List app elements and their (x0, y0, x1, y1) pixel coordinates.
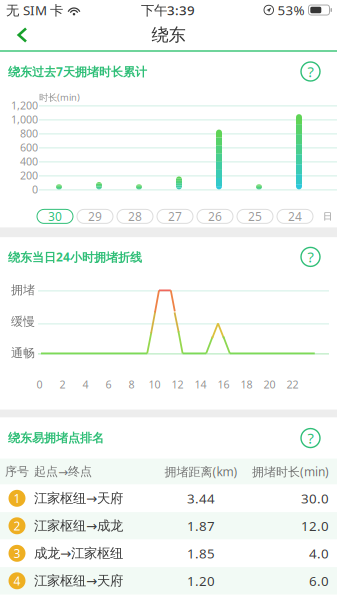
staticText: 6 (105, 377, 111, 392)
staticText: 4 (13, 573, 20, 589)
staticText: 20 (263, 377, 275, 392)
button[interactable]: Help (301, 62, 320, 81)
staticText: 27 (168, 208, 182, 224)
staticText: 拥堵距离(km) (164, 464, 237, 479)
staticText: 12.0 (301, 517, 329, 535)
staticText: 1.20 (187, 572, 215, 590)
button[interactable]: 26 (197, 209, 233, 223)
staticText: 缓慢 (11, 314, 35, 329)
staticText: 26 (208, 208, 222, 224)
staticText: 成龙→江家枢纽 (34, 545, 123, 561)
staticText: 10 (148, 377, 160, 392)
staticText: 时长(min) (39, 91, 80, 103)
staticText: 24 (288, 208, 302, 224)
staticText: 4.0 (309, 544, 329, 562)
button[interactable]: 4 (0, 567, 337, 595)
staticText: 30.0 (301, 489, 329, 507)
staticText: 0 (32, 182, 38, 196)
staticText: 18 (240, 377, 252, 392)
staticText: 江家枢纽→成龙 (34, 518, 123, 534)
staticText: 6.0 (309, 572, 329, 590)
button[interactable]: Back (0, 20, 38, 50)
button[interactable]: 1 (0, 485, 337, 512)
staticText: 0 (36, 377, 42, 392)
staticText: 下午3:39 (141, 1, 195, 19)
button[interactable]: Help (301, 247, 320, 266)
staticText: 8 (128, 377, 134, 392)
staticText: 1 (13, 490, 20, 506)
staticText: 12 (171, 377, 183, 392)
staticText: 16 (217, 377, 229, 392)
staticText: 3.44 (187, 489, 215, 507)
staticText: 通畅 (11, 345, 35, 360)
staticText: 序号 (5, 464, 29, 479)
button[interactable]: 30 (37, 209, 73, 223)
staticText: 绕东过去7天拥堵时长累计 (8, 63, 147, 79)
button[interactable]: 2 (0, 512, 337, 540)
staticText: 600 (20, 140, 38, 154)
staticText: 2 (59, 377, 65, 392)
staticText: 800 (20, 126, 38, 140)
staticText: 30 (48, 208, 62, 224)
staticText: 2 (13, 518, 20, 534)
button[interactable]: 27 (157, 209, 193, 223)
staticText: 拥堵 (11, 282, 35, 297)
button[interactable]: 28 (117, 209, 153, 223)
staticText: 14 (194, 377, 206, 392)
staticText: 江家枢纽→天府 (34, 573, 123, 589)
staticText: 1,000 (11, 112, 38, 126)
staticText: 22 (286, 377, 298, 392)
staticText: 29 (88, 208, 102, 224)
staticText: 拥堵时长(min) (252, 464, 329, 479)
button[interactable]: 3 (0, 540, 337, 567)
staticText: 绕东易拥堵点排名 (8, 431, 104, 445)
staticText: 1.85 (187, 544, 215, 562)
staticText: 200 (20, 168, 38, 182)
staticText: 起点→终点 (34, 464, 92, 479)
staticText: ? (307, 247, 313, 267)
staticText: ? (307, 428, 313, 448)
staticText: 江家枢纽→天府 (34, 490, 123, 506)
staticText: 日 (323, 211, 332, 222)
staticText: 400 (20, 154, 38, 168)
staticText: 1,200 (11, 98, 38, 112)
staticText: 1.87 (187, 517, 215, 535)
button[interactable]: 24 (277, 209, 313, 223)
button[interactable]: Help (301, 429, 320, 448)
staticText: 53% (277, 1, 304, 19)
staticText: 无 SIM 卡 (6, 1, 63, 19)
staticText: 4 (82, 377, 88, 392)
staticText: 28 (128, 208, 142, 224)
staticText: 绕东当日24小时拥堵折线 (8, 249, 142, 265)
staticText: 25 (248, 208, 262, 224)
staticText: ? (307, 62, 313, 81)
button[interactable]: 29 (77, 209, 113, 223)
staticText: 3 (13, 545, 20, 561)
staticText: 绕东 (151, 24, 185, 46)
button[interactable]: 25 (237, 209, 273, 223)
